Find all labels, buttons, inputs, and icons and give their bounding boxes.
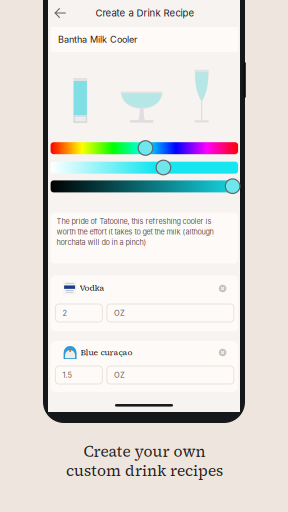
staticText: worth the effort it takes to get the mil… (57, 227, 214, 236)
button[interactable]: OZ (107, 304, 234, 322)
staticText: OZ (114, 370, 125, 379)
button[interactable]: The pride of Tatooine, this refreshing c… (51, 212, 238, 263)
staticText: Vodka (80, 282, 105, 294)
staticText: horchata will do in a pinch) (57, 238, 147, 247)
button[interactable]: Bantha Milk Cooler (51, 27, 238, 52)
staticText: 2 (62, 308, 67, 317)
staticText: Blue curaçao (81, 347, 133, 358)
button[interactable]: Back (48, 1, 73, 24)
button[interactable]: Saturation (51, 160, 238, 175)
button[interactable]: Coupe glass (121, 92, 163, 123)
button[interactable]: Remove Blue curaçao (216, 345, 230, 359)
button[interactable]: Champagne flute (195, 70, 209, 123)
button[interactable]: Highball glass (73, 78, 87, 123)
staticText: Create a Drink Recipe (95, 7, 194, 19)
staticText: OZ (114, 308, 125, 317)
button[interactable]: Brightness (51, 179, 238, 194)
button[interactable]: 2 (55, 304, 102, 322)
button[interactable]: OZ (107, 366, 234, 384)
button[interactable]: 1.5 (55, 366, 102, 384)
button[interactable]: Remove Vodka (216, 281, 230, 295)
staticText: The pride of Tatooine, this refreshing c… (57, 217, 212, 226)
staticText: 1.5 (62, 370, 72, 379)
staticText: Create your own (83, 441, 205, 462)
staticText: custom drink recipes (66, 460, 223, 481)
staticText: Bantha Milk Cooler (58, 34, 137, 45)
button[interactable]: Hue (51, 141, 238, 156)
